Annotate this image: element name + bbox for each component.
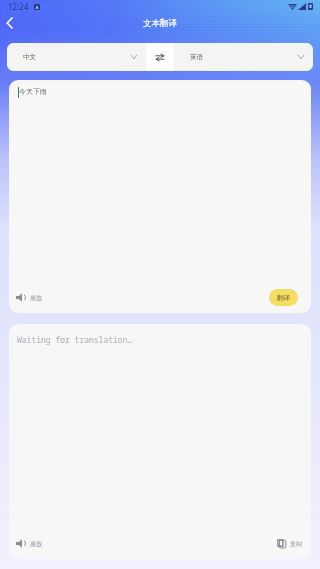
staticText: 中文 bbox=[23, 53, 37, 61]
button[interactable]: 复制 bbox=[277, 539, 302, 548]
staticText: 文本翻译 bbox=[143, 18, 177, 29]
staticText: 英语 bbox=[190, 53, 204, 61]
staticText: 复制 bbox=[290, 540, 302, 548]
staticText: 播放 bbox=[30, 540, 42, 548]
button[interactable]: 播放 bbox=[16, 293, 42, 302]
button[interactable]: Back bbox=[0, 14, 18, 32]
staticText: 播放 bbox=[30, 294, 42, 302]
staticText: 12:24 bbox=[8, 1, 29, 12]
staticText: 今天下雨 bbox=[19, 87, 47, 96]
button[interactable]: 播放 bbox=[16, 539, 42, 548]
staticText: 翻译 bbox=[277, 294, 291, 302]
button[interactable]: 翻译 bbox=[269, 289, 298, 306]
button[interactable]: Swap languages bbox=[146, 45, 174, 70]
staticText: Waiting for translation… bbox=[17, 334, 133, 345]
button[interactable]: 中文 bbox=[7, 43, 146, 71]
button[interactable]: 英语 bbox=[174, 43, 313, 71]
